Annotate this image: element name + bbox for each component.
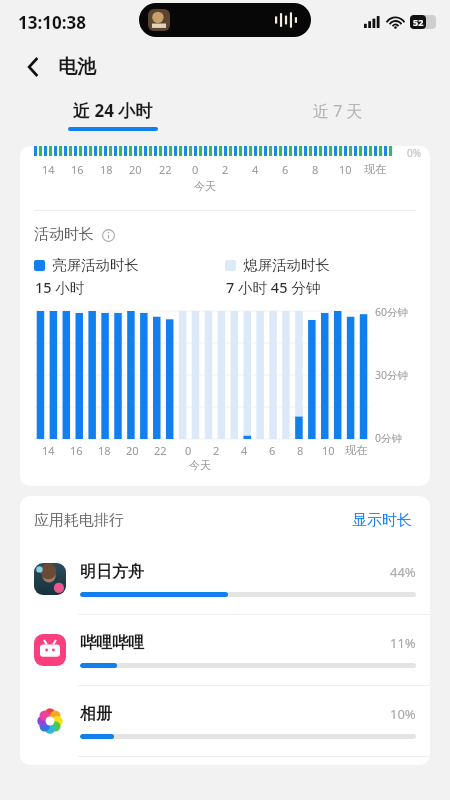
staticText: 6: [282, 162, 289, 177]
staticText: 52: [413, 16, 424, 28]
button[interactable]: Back: [18, 52, 48, 82]
staticText: 哔哩哔哩: [80, 633, 144, 653]
staticText: 16: [70, 443, 83, 458]
staticText: 30分钟: [375, 368, 409, 382]
staticText: 20: [126, 443, 139, 458]
staticText: 8: [312, 162, 319, 177]
staticText: 8: [297, 443, 304, 458]
staticText: 18: [98, 443, 111, 458]
staticText: 0%: [407, 146, 422, 160]
button[interactable]: 近 24 小时: [0, 90, 225, 140]
button[interactable]: 哔哩哔哩: [20, 615, 430, 685]
staticText: 活动时长: [34, 225, 94, 244]
staticText: 2: [222, 162, 229, 177]
staticText: 7 小时 45 分钟: [226, 277, 321, 297]
staticText: 44%: [390, 563, 416, 581]
staticText: 20: [129, 162, 142, 177]
staticText: 14: [42, 162, 55, 177]
button[interactable]: Info: [100, 227, 116, 243]
button[interactable]: 显示时长: [348, 507, 416, 534]
staticText: 16: [71, 162, 84, 177]
staticText: 11%: [390, 634, 416, 652]
staticText: 4: [241, 443, 248, 458]
staticText: 4: [252, 162, 259, 177]
staticText: 今天: [194, 179, 216, 193]
staticText: 今天: [189, 458, 211, 472]
staticText: 18: [100, 162, 113, 177]
staticText: 22: [154, 443, 167, 458]
staticText: 近 24 小时: [73, 99, 153, 122]
staticText: 10: [322, 443, 335, 458]
staticText: 13:10:38: [18, 11, 86, 34]
staticText: 应用耗电排行: [34, 511, 124, 530]
staticText: 现在: [345, 443, 367, 457]
staticText: 6: [269, 443, 276, 458]
staticText: 现在: [364, 162, 386, 176]
button[interactable]: 近 7 天: [225, 90, 450, 140]
staticText: 0: [192, 162, 199, 177]
staticText: 0分钟: [375, 431, 403, 445]
staticText: 0: [185, 443, 192, 458]
staticText: 相册: [80, 704, 112, 724]
staticText: 22: [159, 162, 172, 177]
staticText: 60分钟: [375, 305, 409, 319]
staticText: 电池: [58, 55, 96, 79]
button[interactable]: 明日方舟: [20, 544, 430, 614]
staticText: 近 7 天: [313, 100, 363, 122]
staticText: 2: [213, 443, 220, 458]
staticText: 10: [339, 162, 352, 177]
staticText: 10%: [390, 705, 416, 723]
staticText: 14: [42, 443, 55, 458]
staticText: 明日方舟: [80, 562, 144, 582]
staticText: 15 小时: [35, 277, 85, 297]
staticText: 显示时长: [352, 511, 412, 530]
button[interactable]: 相册: [20, 686, 430, 756]
staticText: 熄屏活动时长: [243, 256, 330, 274]
staticText: 亮屏活动时长: [52, 256, 139, 274]
